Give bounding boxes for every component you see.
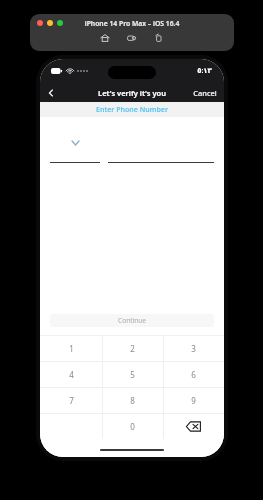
button[interactable]: 6	[163, 361, 224, 387]
button[interactable]: Home	[100, 33, 110, 43]
staticText: 6	[191, 369, 196, 380]
button[interactable]: Minimize	[47, 20, 53, 26]
staticText: 5	[130, 369, 135, 380]
button[interactable]: 0	[102, 413, 163, 439]
button[interactable]: 8	[102, 387, 163, 413]
staticText: 1	[69, 343, 74, 354]
staticText: 7	[69, 395, 74, 406]
button[interactable]: Close	[37, 20, 43, 26]
button[interactable]: 9	[163, 387, 224, 413]
button[interactable]: 7	[40, 387, 102, 413]
button[interactable]: Screenshot	[127, 33, 137, 43]
staticText: 9	[191, 395, 196, 406]
staticText: Enter Phone Number	[96, 105, 168, 115]
staticText: iPhone 14 Pro Max – iOS 16.4	[30, 19, 234, 28]
button[interactable]: Select country code	[50, 138, 100, 163]
staticText: 0	[130, 421, 135, 432]
button[interactable]: Cancel	[193, 83, 217, 102]
staticText: Let's verify it's you	[98, 88, 166, 98]
button[interactable]: 3	[163, 335, 224, 361]
staticText: Continue	[118, 316, 146, 325]
button[interactable]: 4	[40, 361, 102, 387]
staticText: 8	[130, 395, 135, 406]
button[interactable]: Backspace	[163, 413, 224, 439]
button[interactable]: Back	[40, 83, 62, 102]
staticText: 3	[191, 343, 196, 354]
staticText: 4	[69, 369, 74, 380]
button[interactable]: 2	[102, 335, 163, 361]
button[interactable]: 1	[40, 335, 102, 361]
button[interactable]: Maximize	[57, 20, 63, 26]
staticText: 2	[130, 343, 135, 354]
staticText: ٥:١٣	[197, 66, 212, 76]
button[interactable]: 5	[102, 361, 163, 387]
staticText: Cancel	[193, 88, 217, 98]
button[interactable]: Phone number	[108, 138, 214, 163]
button[interactable]: Continue	[50, 314, 214, 327]
button[interactable]: Rotate	[154, 33, 164, 43]
